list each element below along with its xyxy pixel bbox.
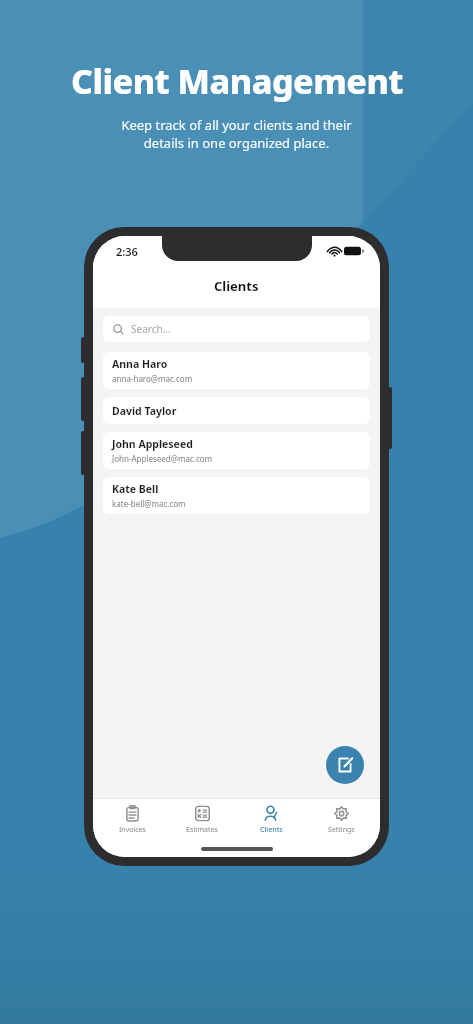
staticText: Kate Bell	[112, 482, 159, 496]
staticText: Estimates	[186, 825, 218, 835]
staticText: kate-bell@mac.com	[112, 498, 186, 509]
button[interactable]: Search...	[103, 316, 370, 342]
staticText: Clients	[260, 825, 283, 835]
button[interactable]: Kate Bell	[103, 477, 370, 514]
button[interactable]: Anna Haro	[103, 352, 370, 389]
staticText: Settings	[328, 825, 355, 835]
staticText: John Appleseed	[112, 437, 193, 451]
button[interactable]: Clients	[240, 799, 302, 841]
button[interactable]: Settings	[310, 799, 372, 841]
staticText: John-Appleseed@mac.com	[112, 453, 213, 464]
staticText: Invoices	[119, 825, 146, 835]
button[interactable]: Invoices	[101, 799, 163, 841]
button[interactable]: New client	[326, 746, 364, 784]
staticText: Search...	[131, 322, 171, 336]
staticText: David Taylor	[112, 404, 177, 418]
button[interactable]: Estimates	[171, 799, 233, 841]
staticText: Clients	[214, 277, 259, 295]
staticText: 2:36	[116, 244, 138, 259]
button[interactable]: David Taylor	[103, 397, 370, 424]
staticText: Client Management	[71, 58, 403, 104]
staticText: Anna Haro	[112, 357, 168, 371]
staticText: anna-haro@mac.com	[112, 373, 193, 384]
button[interactable]: John Appleseed	[103, 432, 370, 469]
staticText: Keep track of all your clients and their…	[121, 116, 352, 152]
